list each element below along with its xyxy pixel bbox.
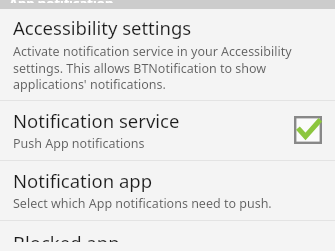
staticText: App notification — [9, 0, 114, 3]
staticText: Accessibility settings — [13, 15, 192, 40]
staticText: Push App notifications — [13, 135, 145, 152]
button[interactable]: Notification service — [0, 101, 335, 160]
button[interactable]: Blocked app — [0, 221, 335, 251]
button[interactable]: Notification app — [0, 161, 335, 220]
staticText: Notification app — [13, 168, 153, 193]
staticText: Activate notification service in your Ac… — [13, 43, 321, 92]
staticText: Notification service — [13, 108, 180, 133]
staticText: Select which App notifications need to p… — [13, 195, 272, 212]
staticText: Blocked app — [13, 230, 120, 242]
other: Notification service enabled — [294, 116, 322, 144]
button[interactable]: Accessibility settings — [0, 9, 335, 100]
button[interactable]: App notification — [0, 0, 335, 9]
